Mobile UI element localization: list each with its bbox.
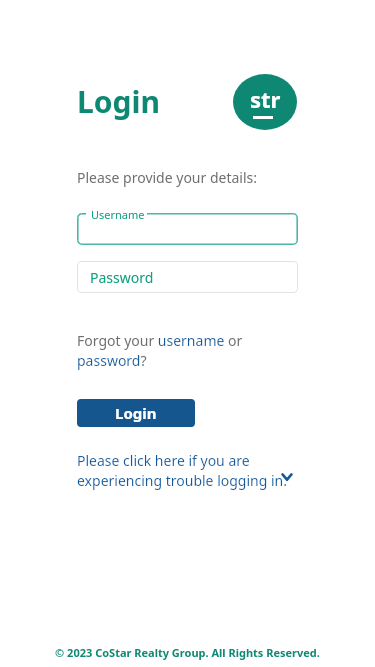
staticText: © 2023 CoStar Realty Group. All Rights R… bbox=[55, 645, 320, 660]
staticText: Password bbox=[90, 268, 154, 287]
staticText: Please click here if you are experiencin… bbox=[77, 451, 287, 491]
button[interactable]: Login bbox=[77, 399, 195, 427]
button[interactable] bbox=[77, 213, 298, 245]
staticText: Login bbox=[77, 81, 160, 122]
button[interactable]: Password bbox=[77, 261, 298, 293]
staticText: Please provide your details: bbox=[77, 168, 258, 187]
staticText: Login bbox=[115, 403, 157, 423]
button[interactable]: STR logo bbox=[233, 74, 297, 130]
button[interactable]: Please click here if you are experiencin… bbox=[77, 451, 298, 491]
staticText: str bbox=[250, 84, 281, 114]
staticText: Username bbox=[91, 207, 145, 222]
button[interactable]: Forgot your username or password? bbox=[77, 331, 298, 371]
